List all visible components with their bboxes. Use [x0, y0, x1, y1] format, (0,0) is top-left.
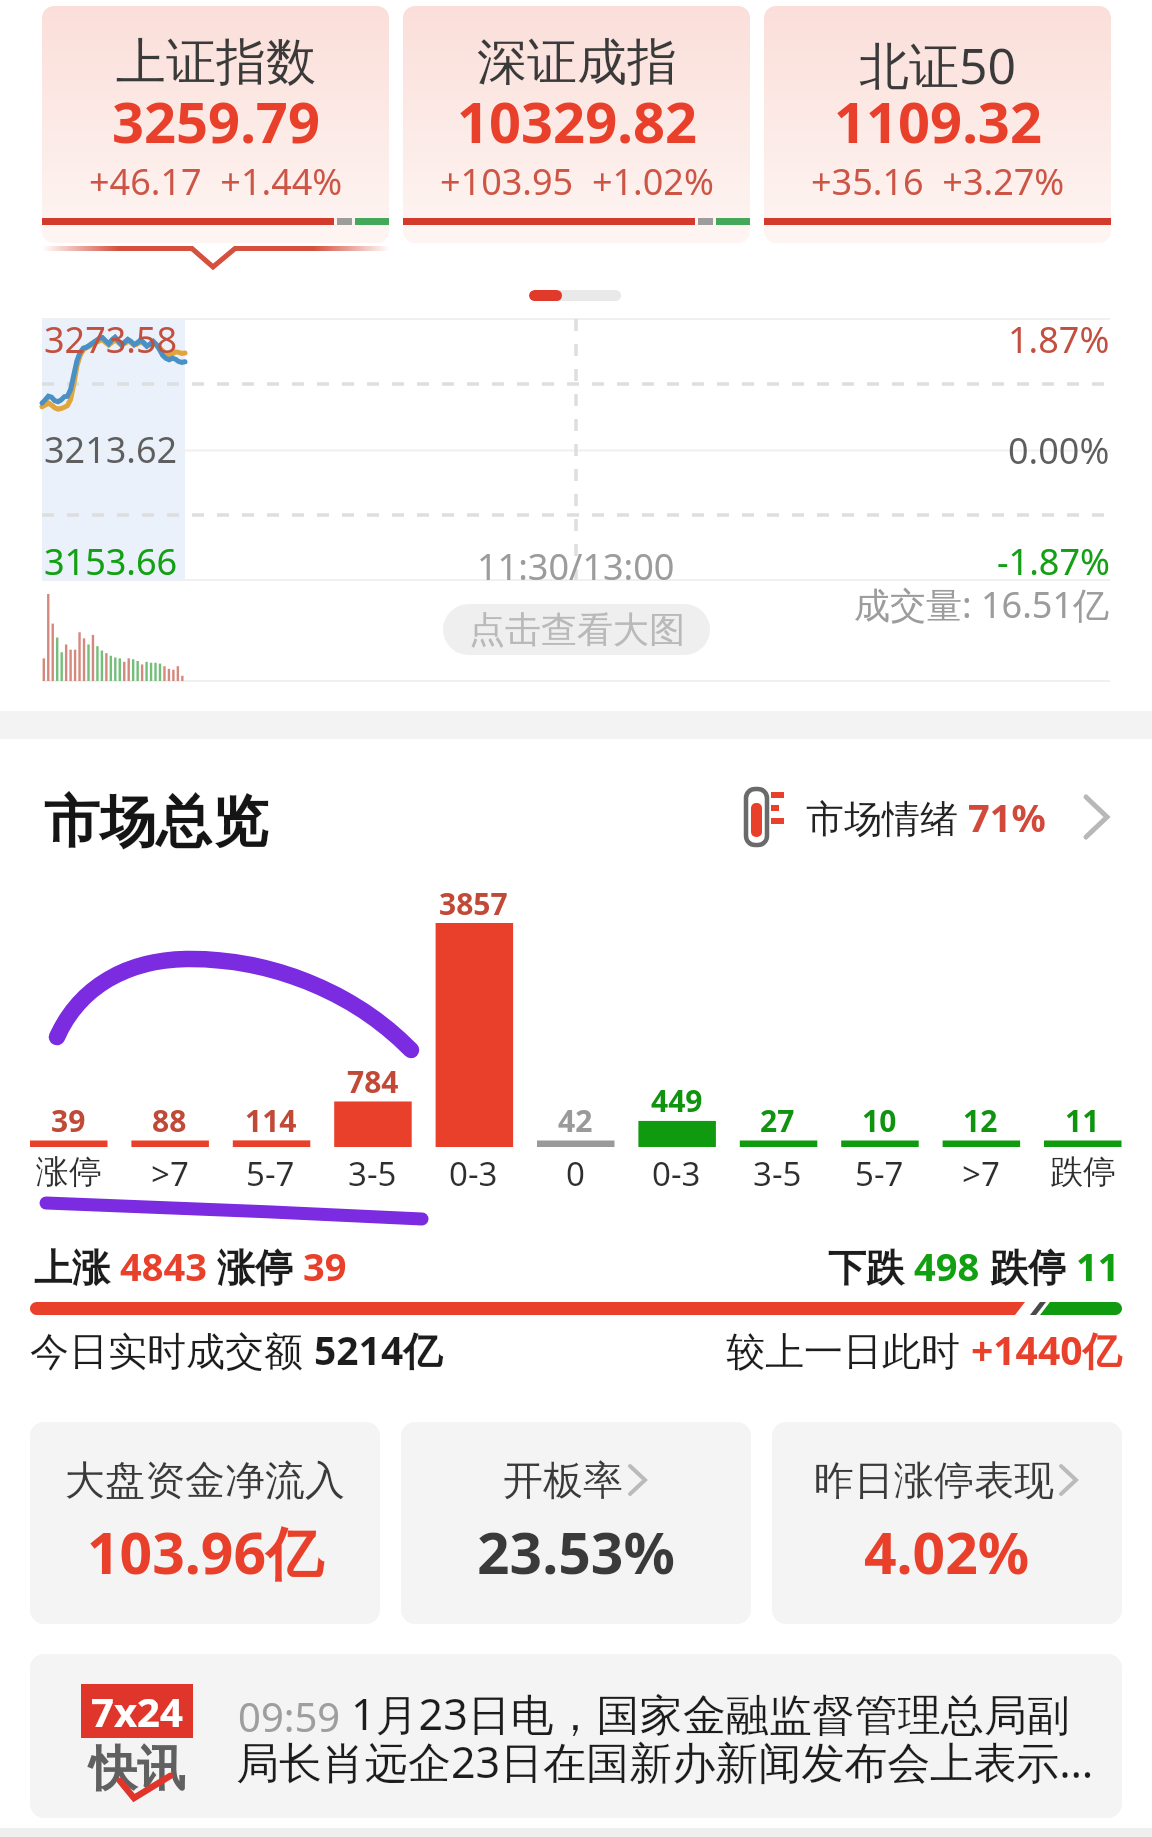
button[interactable]: 上证指数 [42, 6, 389, 243]
staticText: 449 [651, 1080, 703, 1121]
staticText: 较上一日此时 [726, 1323, 971, 1376]
staticText: 昨日涨停表现 [814, 1455, 1054, 1505]
staticText: 784 [347, 1061, 399, 1102]
staticText: 27 [760, 1100, 795, 1141]
staticText: 开板率 [503, 1455, 623, 1505]
staticText: 498 [914, 1240, 980, 1292]
staticText: 跌停 [980, 1240, 1076, 1292]
staticText: 局长肖远企23日在国新办新闻发布会上表示… [236, 1732, 1094, 1791]
button[interactable]: 开板率 [401, 1422, 751, 1624]
staticText: 0 [566, 1151, 585, 1196]
staticText: 4843 [120, 1240, 207, 1292]
staticText: 7x24 [91, 1684, 183, 1738]
staticText: 114 [245, 1100, 297, 1141]
button[interactable]: 指数分页指示器 [529, 290, 621, 301]
staticText: 11 [1076, 1240, 1120, 1292]
staticText: 下跌 [828, 1240, 914, 1292]
staticText: +1440亿 [971, 1323, 1122, 1376]
staticText: +103.95 +1.02% [440, 157, 714, 206]
staticText: 11 [1065, 1100, 1100, 1141]
staticText: 快讯 [89, 1739, 185, 1799]
staticText: 市场情绪 [806, 791, 968, 843]
staticText: 3259.79 [112, 83, 320, 159]
staticText: +46.17 +1.44% [89, 157, 343, 206]
staticText: 今日实时成交额 [30, 1323, 314, 1376]
staticText: 0-3 [449, 1151, 498, 1196]
button[interactable]: 昨日涨停表现 [772, 1422, 1122, 1624]
other: 查看市场情绪 [1082, 793, 1112, 841]
staticText: 10 [862, 1100, 897, 1141]
staticText: 39 [303, 1240, 347, 1292]
button[interactable]: 点击查看大图 [443, 604, 710, 655]
staticText: +35.16 +3.27% [811, 157, 1065, 206]
staticText: 71% [968, 791, 1046, 843]
staticText: 5214亿 [314, 1323, 443, 1376]
staticText: 39 [51, 1100, 86, 1141]
staticText: 3273.58 [44, 315, 178, 364]
staticText: 涨停 [207, 1240, 303, 1292]
staticText: 11:30/13:00 [477, 542, 675, 591]
staticText: 09:59 [238, 1689, 351, 1743]
staticText: 0-3 [652, 1151, 701, 1196]
staticText: 10329.82 [457, 83, 697, 159]
staticText: 103.96亿 [87, 1513, 324, 1591]
staticText: 大盘资金净流入 [65, 1455, 345, 1505]
staticText: 点击查看大图 [469, 607, 685, 652]
staticText: 12 [963, 1100, 998, 1141]
staticText: 3153.66 [44, 537, 178, 586]
staticText: 跌停 [1050, 1151, 1116, 1193]
button[interactable]: 上证指数分时图，点击查看大图 [0, 315, 1152, 705]
staticText: 3213.62 [44, 425, 178, 474]
staticText: 北证50 [859, 31, 1017, 99]
staticText: 23.53% [477, 1513, 675, 1591]
button[interactable]: 大盘资金净流入 [30, 1422, 380, 1624]
staticText: 4.02% [864, 1513, 1030, 1591]
staticText: 1月23日电，国家金融监督管理总局副 [351, 1684, 1070, 1743]
staticText: 上涨 [34, 1240, 120, 1292]
button[interactable]: 深证成指 [403, 6, 750, 243]
staticText: 涨停 [36, 1151, 102, 1193]
staticText: 深证成指 [477, 31, 677, 94]
staticText: 成交量: 16.51亿 [854, 580, 1110, 629]
staticText: 市场总览 [44, 787, 268, 858]
staticText: 3857 [439, 883, 508, 924]
staticText: 上证指数 [116, 31, 316, 94]
staticText: 5-7 [855, 1151, 904, 1196]
button[interactable]: 7x24 [30, 1654, 1122, 1818]
staticText: 1.87% [1008, 315, 1110, 364]
staticText: 5-7 [246, 1151, 295, 1196]
staticText: 3-5 [753, 1151, 802, 1196]
staticText: -1.87% [997, 537, 1110, 586]
button[interactable]: 市场情绪 [744, 786, 1112, 848]
staticText: 0.00% [1008, 426, 1110, 475]
staticText: 1109.32 [834, 83, 1042, 159]
staticText: 88 [152, 1100, 187, 1141]
staticText: >7 [151, 1151, 189, 1196]
staticText: 3-5 [348, 1151, 397, 1196]
staticText: 42 [558, 1100, 593, 1141]
button[interactable]: 北证50 [764, 6, 1111, 243]
staticText: >7 [962, 1151, 1000, 1196]
